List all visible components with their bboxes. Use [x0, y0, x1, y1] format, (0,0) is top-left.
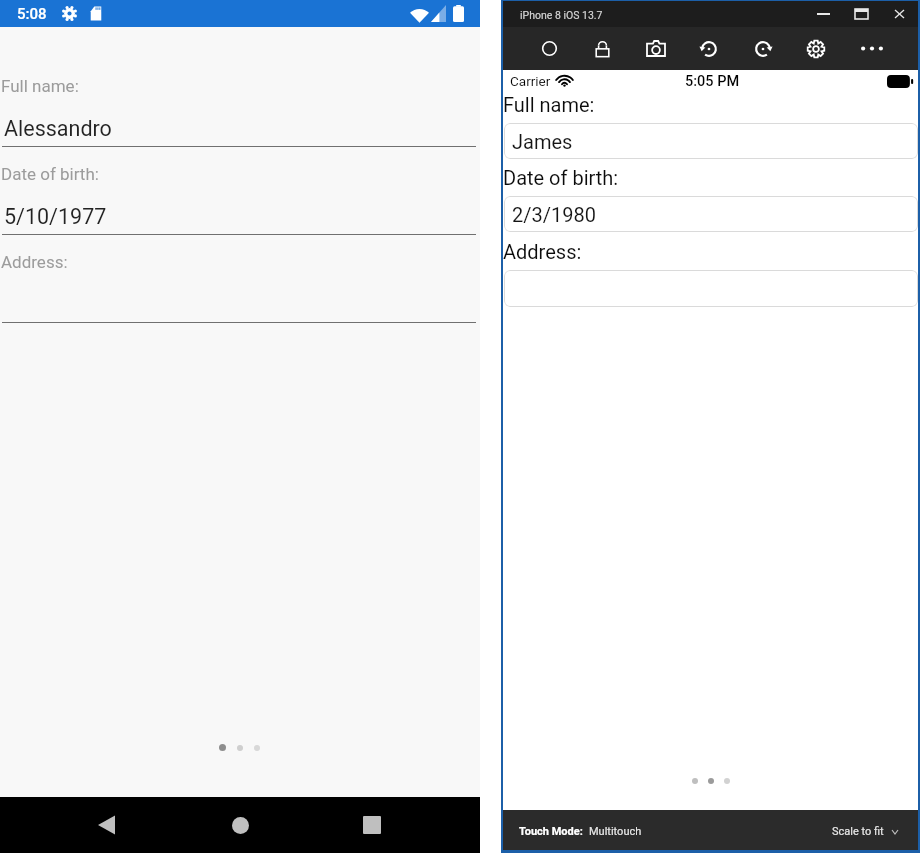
- staticText: Address:: [1, 252, 68, 272]
- button[interactable]: Home: [216, 801, 264, 849]
- staticText: 5/10/1977: [4, 204, 107, 229]
- button[interactable]: Minimize: [804, 1, 842, 27]
- staticText: Scale to fit: [832, 825, 884, 838]
- staticText: 5:05 PM: [685, 73, 740, 90]
- button[interactable]: Lock: [580, 27, 624, 70]
- staticText: Full name:: [503, 93, 595, 116]
- staticText: Touch Mode:: [519, 825, 583, 838]
- button[interactable]: Back: [82, 801, 130, 849]
- staticText: Address:: [503, 240, 582, 263]
- staticText: James: [512, 130, 573, 153]
- staticText: Carrier: [510, 73, 551, 89]
- staticText: 2/3/1980: [512, 203, 596, 226]
- button[interactable]: 2/3/1980: [504, 196, 918, 232]
- staticText: Date of birth:: [1, 164, 99, 184]
- staticText: iPhone 8 iOS 13.7: [520, 9, 603, 21]
- button[interactable]: Maximize: [842, 1, 881, 27]
- staticText: 5:08: [17, 5, 47, 23]
- staticText: Alessandro: [4, 116, 112, 141]
- button[interactable]: More: [850, 27, 894, 70]
- button[interactable]: Home: [527, 27, 571, 70]
- staticText: Date of birth:: [503, 166, 619, 189]
- button[interactable]: Close: [881, 1, 918, 27]
- staticText: Full name:: [1, 76, 79, 96]
- button[interactable]: Scale to fit: [832, 825, 898, 838]
- button[interactable]: [504, 270, 918, 307]
- staticText: Multitouch: [589, 825, 642, 838]
- button[interactable]: Rotate left: [687, 27, 731, 70]
- button[interactable]: Recents: [348, 801, 396, 849]
- button[interactable]: Rotate right: [741, 27, 785, 70]
- button[interactable]: Screenshot: [634, 27, 678, 70]
- button[interactable]: James: [504, 123, 918, 159]
- button[interactable]: Settings: [794, 27, 838, 70]
